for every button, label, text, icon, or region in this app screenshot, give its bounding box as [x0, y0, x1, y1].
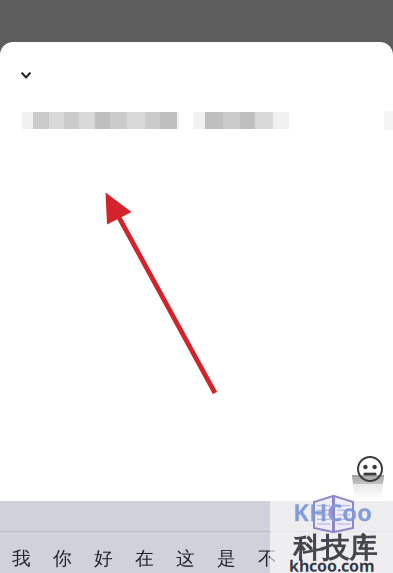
- staticText: 好: [94, 547, 113, 570]
- staticText: 不: [258, 547, 277, 570]
- button[interactable]: Collapse: [5, 55, 47, 95]
- button[interactable]: 这: [165, 538, 206, 573]
- button[interactable]: 是: [206, 538, 247, 573]
- staticText: 在: [135, 547, 154, 570]
- button[interactable]: 在: [124, 538, 165, 573]
- button[interactable]: 不: [247, 538, 288, 573]
- staticText: KHCoo: [293, 496, 372, 528]
- staticText: khcoo.com: [289, 555, 375, 573]
- button[interactable]: Emoji keyboard: [351, 450, 389, 488]
- staticText: 这: [176, 547, 195, 570]
- staticText: 我: [12, 547, 31, 570]
- button[interactable]: 你: [42, 538, 83, 573]
- button[interactable]: 好: [83, 538, 124, 573]
- staticText: 你: [53, 547, 72, 570]
- staticText: 是: [217, 547, 236, 570]
- staticText: 科技库: [293, 531, 377, 565]
- button[interactable]: 我: [1, 538, 42, 573]
